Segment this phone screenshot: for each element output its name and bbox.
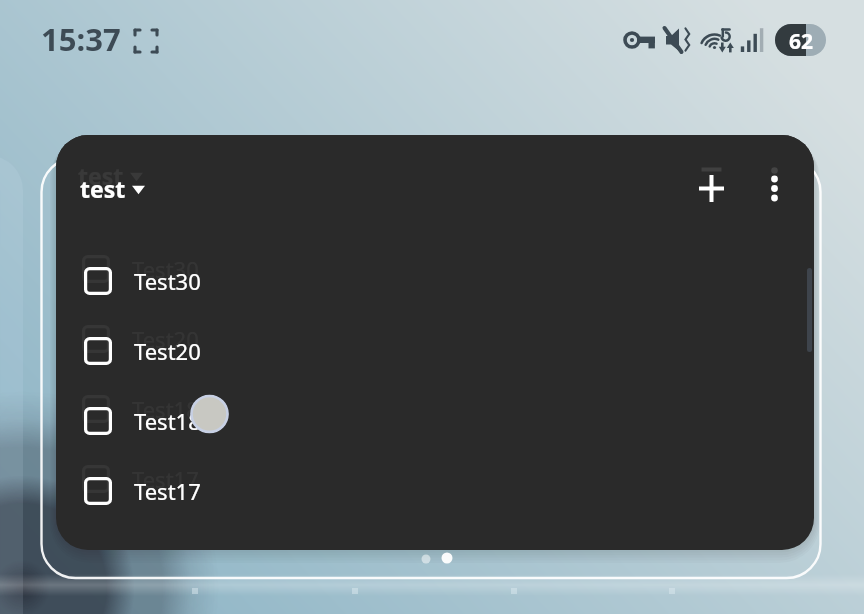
staticText: Test30 <box>134 266 201 296</box>
button[interactable]: Checkbox Test30 <box>84 267 112 295</box>
staticText: Test17 <box>132 464 199 494</box>
staticText: Test18 <box>134 406 201 436</box>
button[interactable]: test <box>80 173 145 204</box>
button[interactable]: Checkbox Test20 <box>84 337 112 365</box>
button[interactable]: Checkbox Test18 <box>84 407 112 435</box>
button[interactable]: More options <box>750 164 798 212</box>
staticText: Test17 <box>134 476 201 506</box>
button[interactable]: Add <box>687 164 735 212</box>
button[interactable]: Checkbox Test17 <box>84 477 112 505</box>
staticText: 15:37 <box>41 18 121 60</box>
button[interactable]: Test30 <box>56 243 814 313</box>
staticText: Test30 <box>132 254 199 284</box>
staticText: Test20 <box>132 324 199 354</box>
staticText: 62 <box>789 27 814 56</box>
staticText: test <box>78 160 124 191</box>
button[interactable]: Test18 <box>56 383 814 453</box>
staticText: test <box>80 173 126 204</box>
staticText: Test18 <box>132 394 199 424</box>
staticText: Test20 <box>134 336 201 366</box>
button[interactable]: Test20 <box>56 313 814 383</box>
button[interactable]: Test17 <box>56 453 814 523</box>
